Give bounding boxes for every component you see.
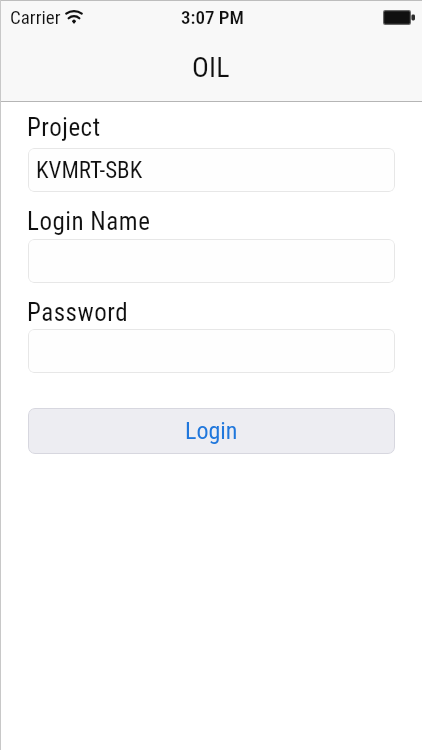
staticText: Password <box>27 298 129 327</box>
staticText: Login Name <box>27 207 151 236</box>
staticText: Carrier <box>10 6 61 28</box>
staticText: OIL <box>192 51 230 84</box>
staticText: Login <box>185 417 238 445</box>
button[interactable] <box>28 329 395 373</box>
staticText: 3:07 PM <box>181 6 244 28</box>
button[interactable]: Login <box>28 408 395 454</box>
button[interactable]: KVMRT-SBK <box>28 148 395 192</box>
staticText: Project <box>27 113 101 142</box>
other: Wi-Fi signal <box>66 10 82 24</box>
button[interactable] <box>28 239 395 283</box>
other: Battery full <box>383 10 415 25</box>
staticText: KVMRT-SBK <box>36 157 143 184</box>
